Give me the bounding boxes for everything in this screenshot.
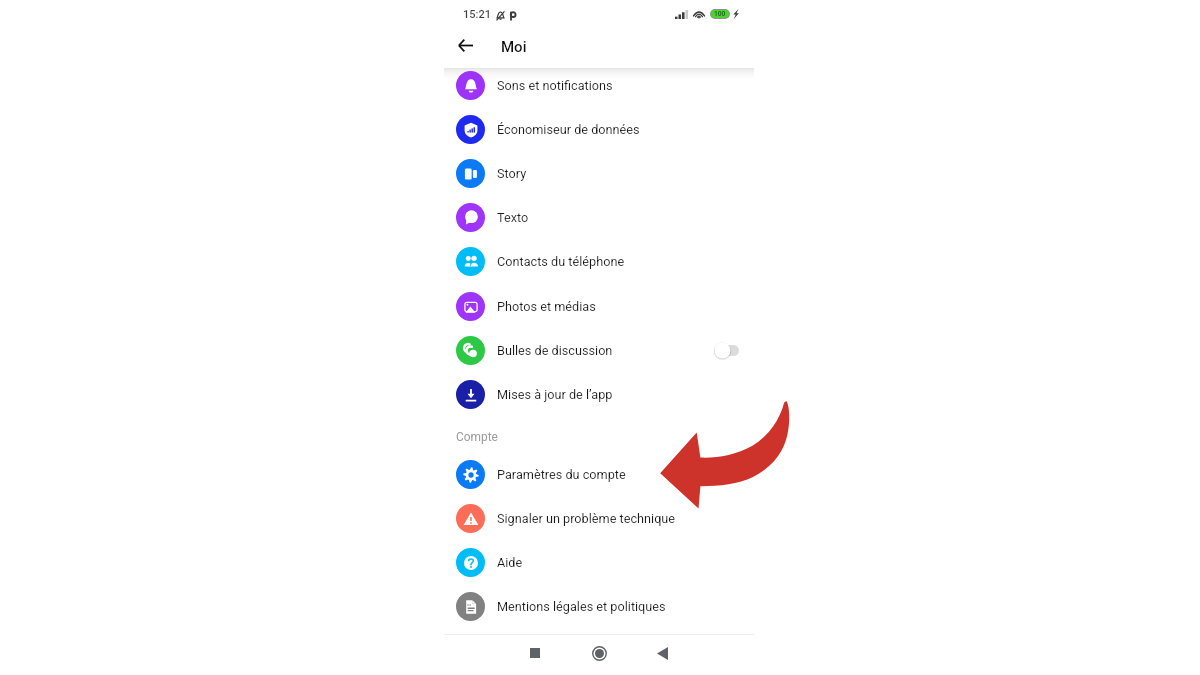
staticText: Sons et notifications bbox=[497, 78, 613, 93]
button[interactable]: Mises à jour de l’app bbox=[444, 372, 754, 416]
button[interactable]: Texto bbox=[444, 195, 754, 239]
staticText: Moi bbox=[501, 38, 527, 56]
staticText: Économiseur de données bbox=[497, 122, 640, 137]
button[interactable]: Activer les bulles de discussion bbox=[715, 342, 739, 359]
staticText: 100 bbox=[714, 10, 726, 18]
staticText: Mises à jour de l’app bbox=[497, 387, 613, 402]
button[interactable]: Retour bbox=[650, 641, 674, 665]
button[interactable]: Sons et notifications bbox=[444, 63, 754, 107]
button[interactable]: Accueil bbox=[587, 641, 611, 665]
staticText: Contacts du téléphone bbox=[497, 254, 625, 269]
staticText: 15:21 bbox=[463, 8, 491, 21]
button[interactable]: Retour bbox=[454, 34, 477, 57]
button[interactable]: Story bbox=[444, 151, 754, 195]
button[interactable]: Économiseur de données bbox=[444, 107, 754, 151]
staticText: Story bbox=[497, 166, 527, 181]
staticText: Mentions légales et politiques bbox=[497, 599, 666, 614]
staticText: Texto bbox=[497, 210, 529, 225]
button[interactable]: Bulles de discussion bbox=[444, 328, 754, 372]
button[interactable]: Contacts du téléphone bbox=[444, 239, 754, 283]
staticText: Bulles de discussion bbox=[497, 343, 613, 358]
staticText: Compte bbox=[456, 430, 498, 444]
staticText: Paramètres du compte bbox=[497, 467, 626, 482]
button[interactable]: Aide bbox=[444, 540, 754, 584]
staticText: Signaler un problème technique bbox=[497, 511, 676, 526]
button[interactable]: Photos et médias bbox=[444, 284, 754, 328]
staticText: Aide bbox=[497, 555, 523, 570]
button[interactable]: Signaler un problème technique bbox=[444, 496, 754, 540]
button[interactable]: Mentions légales et politiques bbox=[444, 584, 754, 628]
button[interactable]: Paramètres du compte bbox=[444, 452, 754, 496]
button[interactable]: Applications récentes bbox=[523, 641, 547, 665]
staticText: Photos et médias bbox=[497, 299, 596, 314]
